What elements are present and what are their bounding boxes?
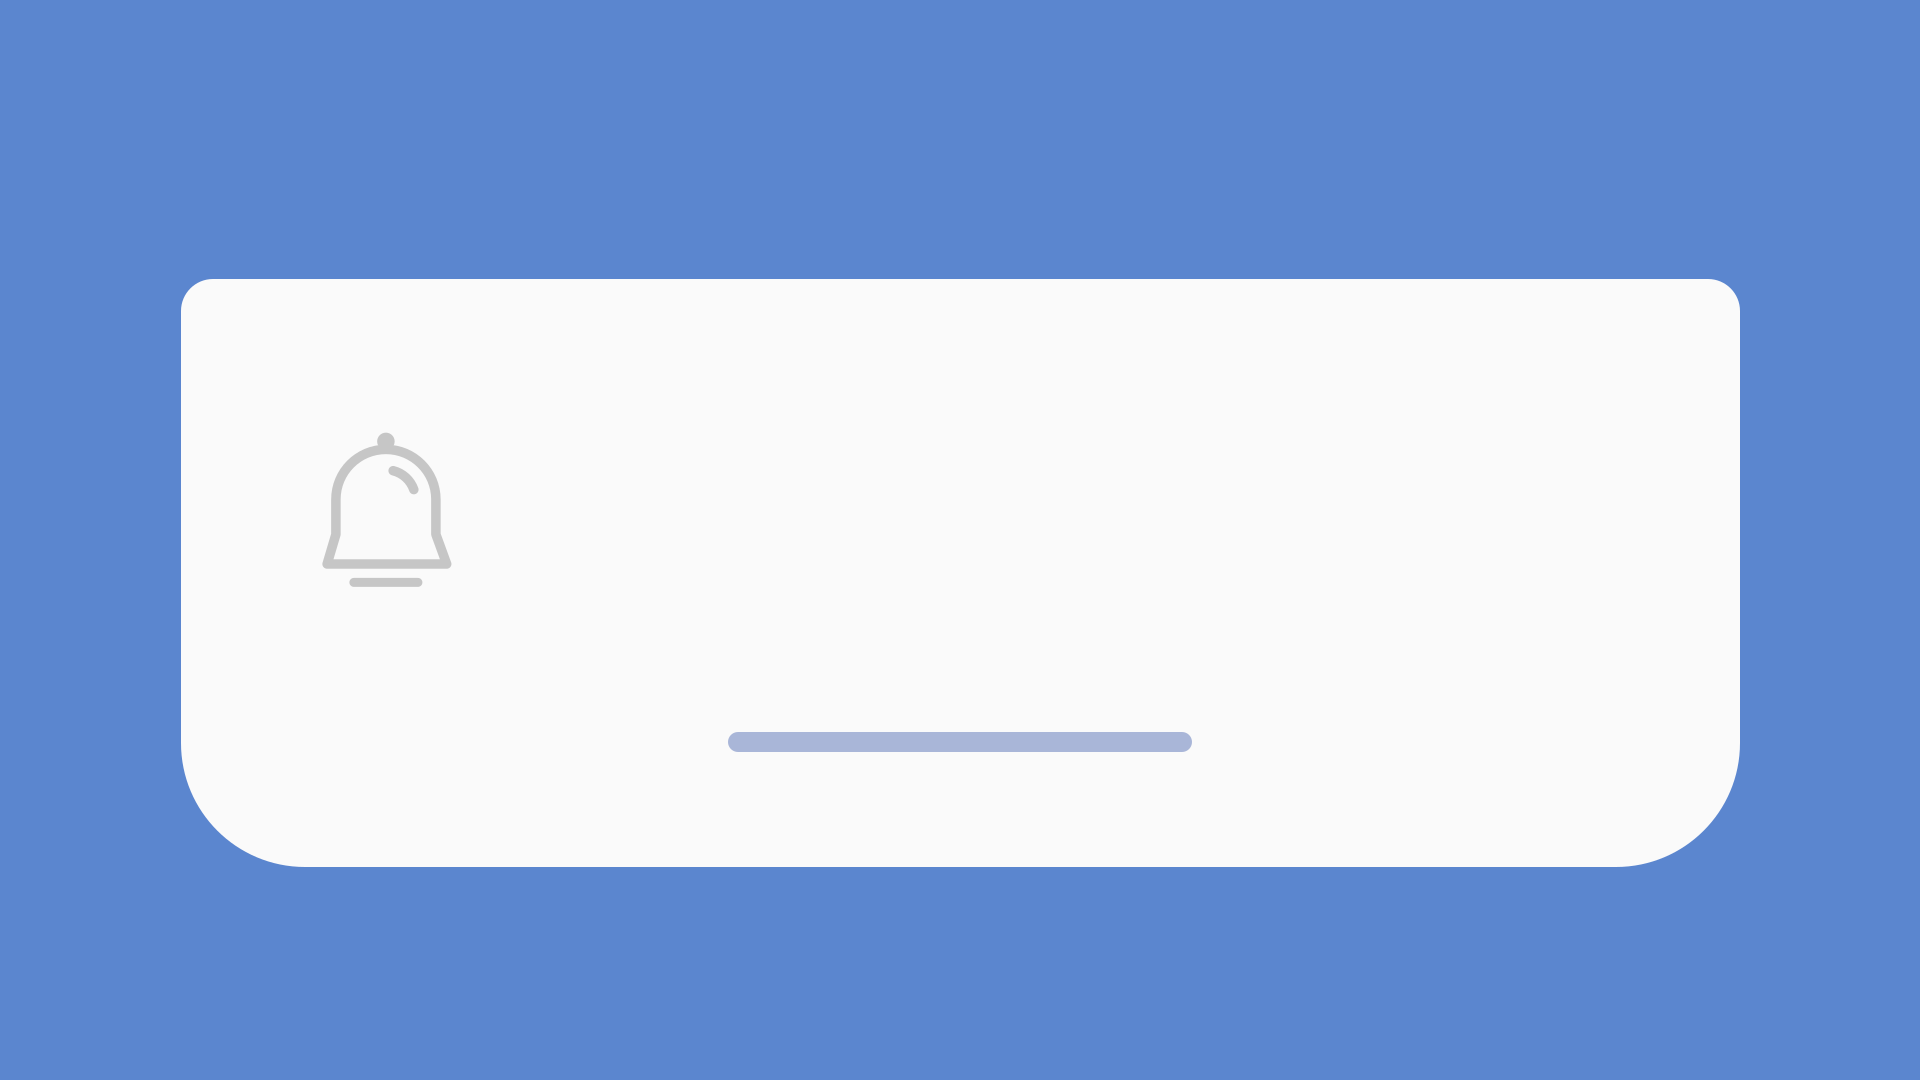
- button[interactable]: Notifications: [323, 431, 451, 587]
